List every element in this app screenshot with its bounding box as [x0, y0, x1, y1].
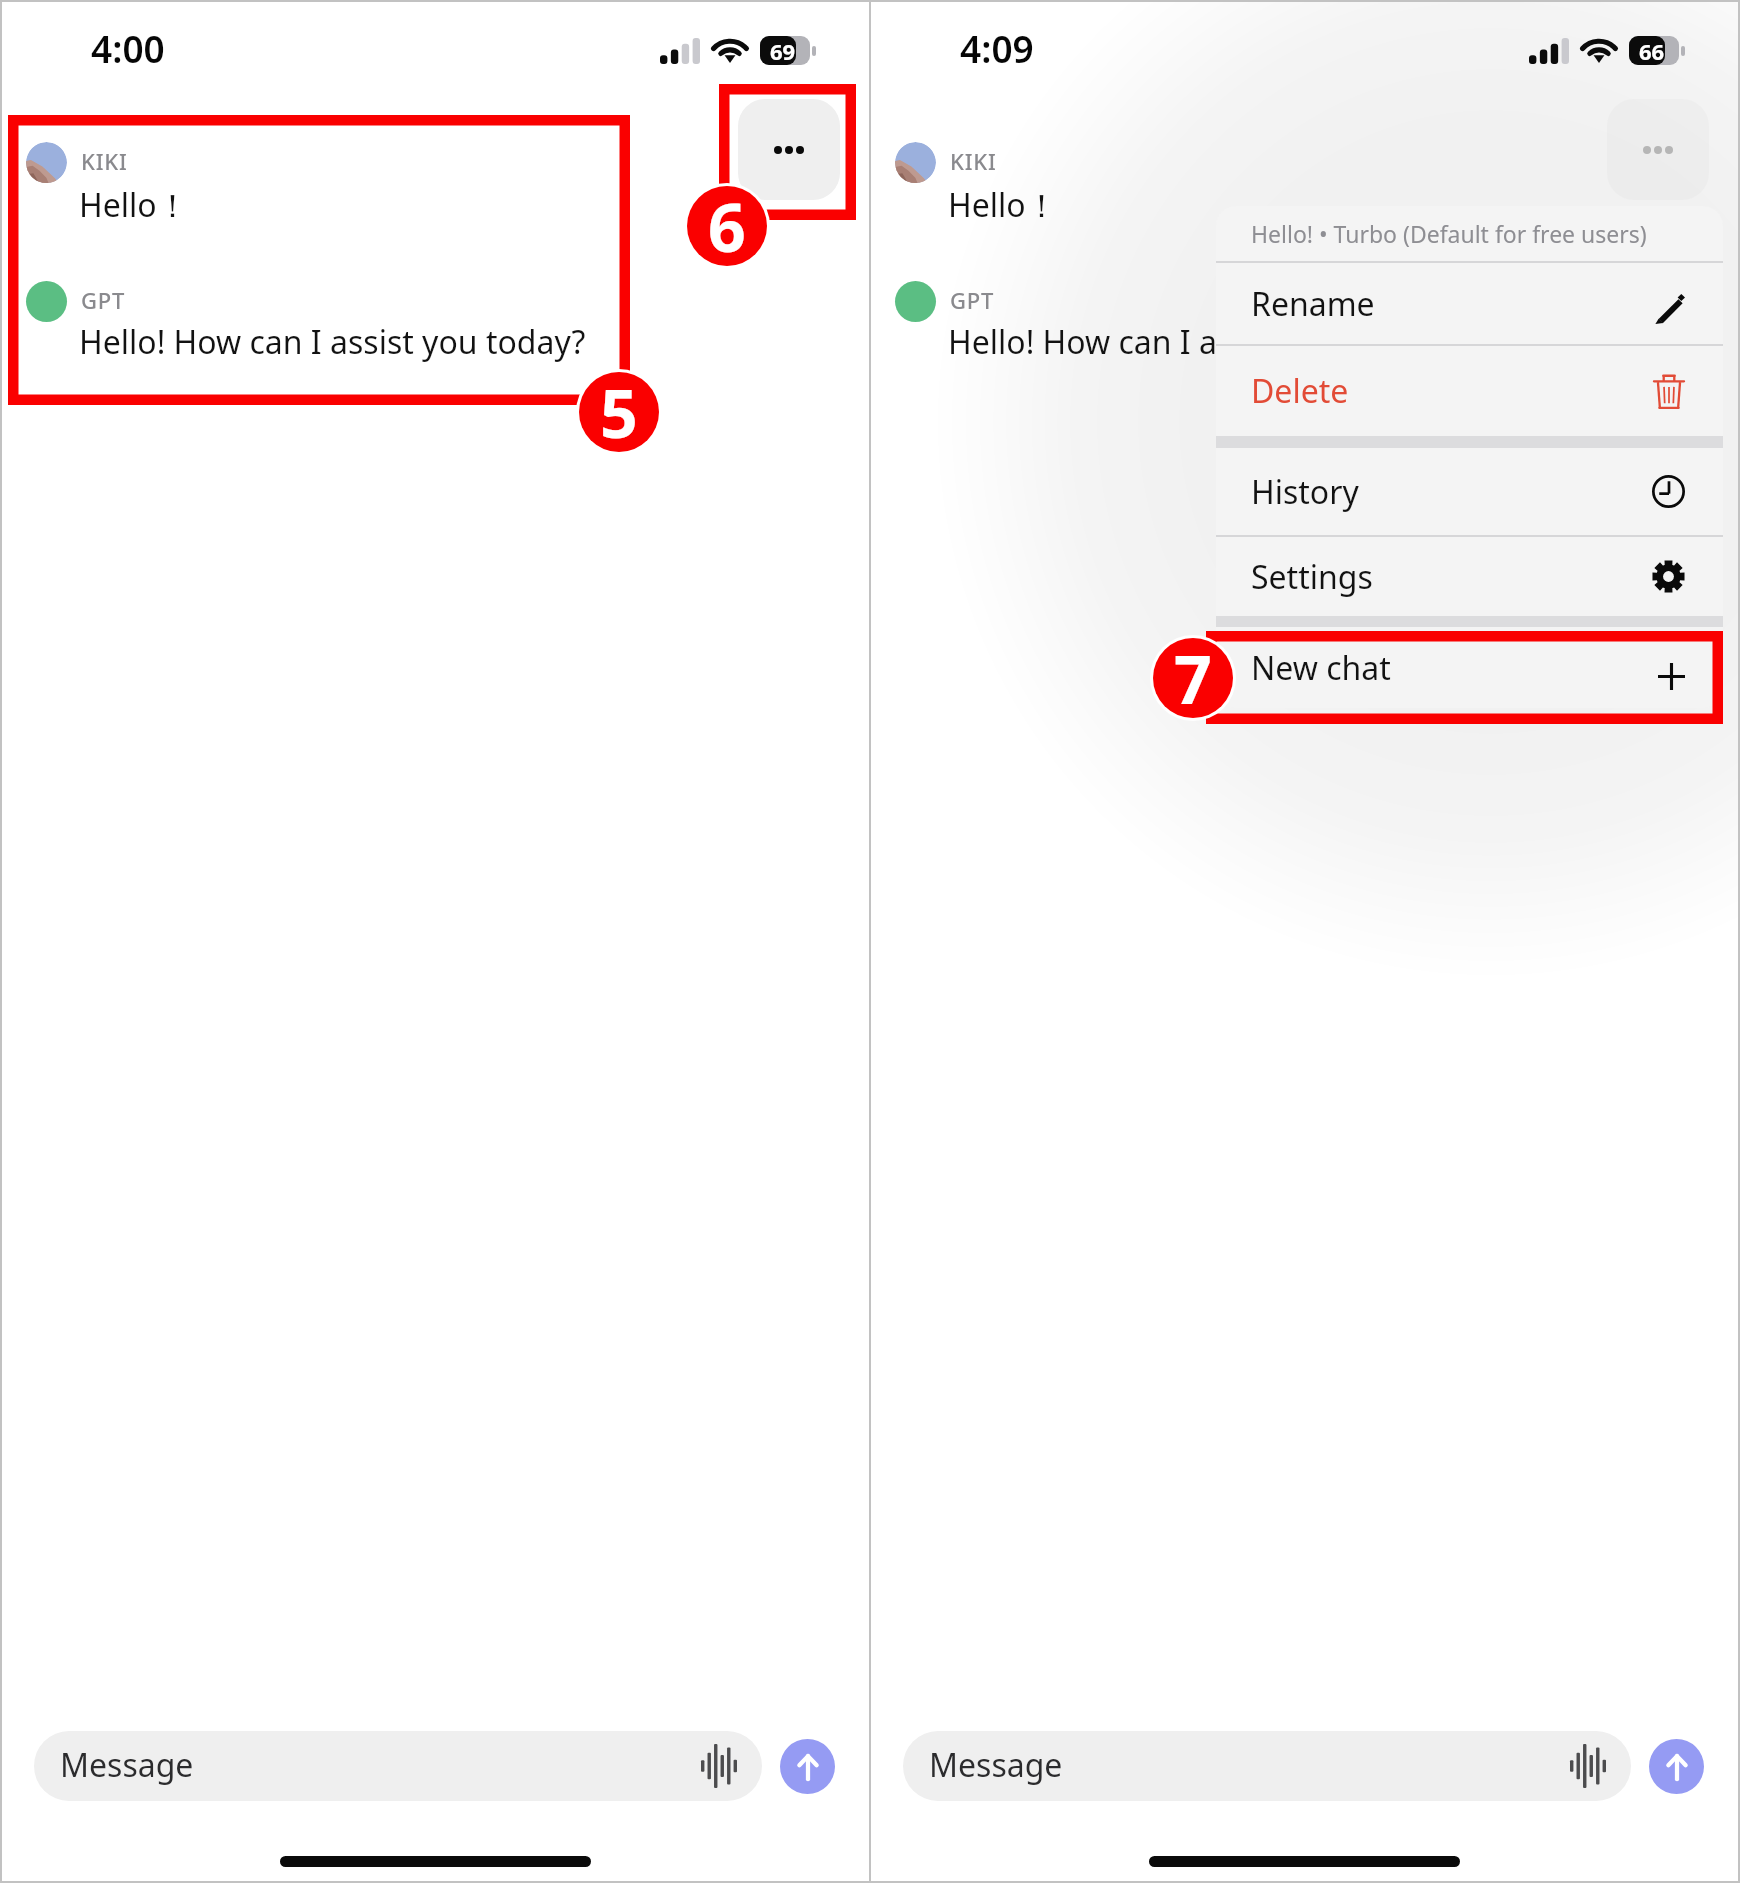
- button[interactable]: Message: [903, 1731, 1631, 1801]
- staticText: Rename: [1251, 282, 1375, 326]
- staticText: 4:09: [960, 23, 1034, 73]
- staticText: Hello! How can I assist you today?: [79, 320, 586, 364]
- button[interactable]: History: [1216, 448, 1723, 535]
- staticText: Hello！: [948, 183, 1058, 227]
- staticText: Hello！: [79, 183, 189, 227]
- staticText: 7: [1174, 633, 1212, 719]
- staticText: KIKI: [81, 146, 128, 176]
- staticText: GPT: [950, 285, 995, 315]
- button[interactable]: Send: [780, 1739, 835, 1794]
- staticText: Hello! How can I a: [948, 320, 1217, 364]
- staticText: 5: [600, 367, 638, 453]
- staticText: History: [1251, 470, 1359, 514]
- button[interactable]: Send: [1649, 1739, 1704, 1794]
- staticText: 4:00: [91, 23, 165, 73]
- staticText: Hello! • Turbo (Default for free users): [1251, 218, 1647, 249]
- staticText: GPT: [81, 285, 126, 315]
- staticText: Settings: [1251, 555, 1373, 599]
- button[interactable]: New chat: [1216, 627, 1723, 708]
- staticText: New chat: [1251, 646, 1391, 690]
- button[interactable]: Message: [34, 1731, 762, 1801]
- button[interactable]: More options: [1607, 99, 1709, 200]
- staticText: Message: [929, 1743, 1063, 1787]
- button[interactable]: More options: [738, 99, 840, 200]
- staticText: 66: [1639, 36, 1665, 65]
- staticText: KIKI: [950, 146, 997, 176]
- button[interactable]: Delete: [1216, 346, 1723, 436]
- staticText: Message: [60, 1743, 194, 1787]
- staticText: 69: [770, 36, 796, 65]
- staticText: Delete: [1251, 369, 1349, 413]
- staticText: 6: [708, 181, 746, 267]
- button[interactable]: Settings: [1216, 537, 1723, 616]
- button[interactable]: Rename: [1216, 263, 1723, 344]
